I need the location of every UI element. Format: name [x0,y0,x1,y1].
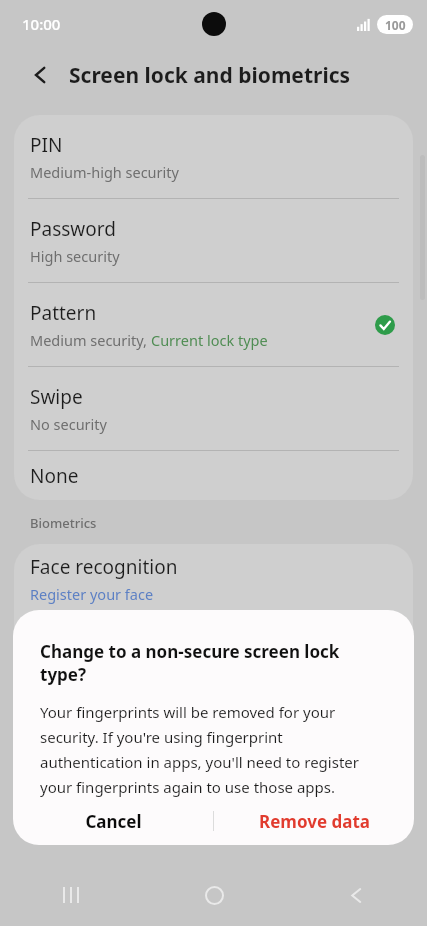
button[interactable]: Recents [0,864,143,926]
staticText: 100 [385,17,406,33]
staticText: Pattern [30,300,97,326]
staticText: Screen lock and biometrics [69,61,351,90]
button[interactable]: Back [24,58,58,92]
staticText: Current lock type [151,330,268,350]
staticText: Swipe [30,384,83,410]
button[interactable]: Face recognition [14,544,413,614]
button[interactable]: Remove data [214,797,414,845]
staticText: Biometrics [30,514,97,532]
staticText: Face recognition [30,554,178,580]
staticText: Password [30,216,116,242]
staticText: Register your face [30,584,154,604]
button[interactable]: Cancel [13,797,213,845]
button[interactable]: Swipe [14,367,413,450]
staticText: 10:00 [22,14,61,34]
button[interactable]: Password [14,199,413,282]
staticText: Cancel [85,810,142,833]
button[interactable]: Pattern [14,283,413,366]
button[interactable]: Home [143,864,285,926]
staticText: Medium security, [30,330,151,350]
staticText: Remove data [259,810,370,833]
staticText: Change to a non-secure screen lock type? [40,640,387,686]
staticText: High security [30,246,120,266]
staticText: No security [30,414,107,434]
staticText: Your fingerprints will be removed for yo… [40,702,387,797]
button[interactable]: None [14,451,413,500]
staticText: Medium-high security [30,162,179,182]
staticText: None [30,463,79,489]
button[interactable]: PIN [14,115,413,198]
staticText: PIN [30,132,63,158]
